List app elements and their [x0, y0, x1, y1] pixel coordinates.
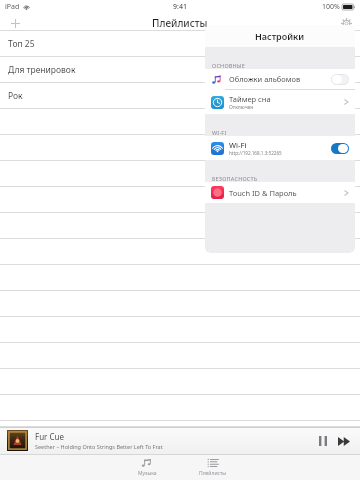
- staticText: ОСНОВНЫЕ: [212, 62, 245, 69]
- staticText: Таймер сна: [229, 94, 271, 104]
- staticText: Топ 25: [8, 38, 35, 50]
- button[interactable]: Touch ID & Пароль: [205, 182, 355, 203]
- button[interactable]: Switch on: [331, 143, 349, 154]
- button[interactable]: Add playlist: [7, 15, 23, 31]
- staticText: Настройки: [255, 30, 305, 42]
- button[interactable]: Таймер сна: [205, 90, 355, 114]
- staticText: iPad: [5, 2, 20, 12]
- button[interactable]: Settings: [338, 15, 354, 31]
- button[interactable]: Wi-Fi: [205, 136, 355, 160]
- button[interactable]: Рок: [0, 83, 360, 109]
- staticText: Плейлисты: [152, 16, 208, 30]
- button[interactable]: Музыка: [126, 454, 168, 480]
- staticText: Seether – Holding Onto Strings Better Le…: [35, 443, 163, 450]
- staticText: http://192.168.1.3:52265: [229, 150, 282, 156]
- staticText: Плейлисты: [199, 470, 227, 477]
- staticText: 9:41: [173, 2, 187, 12]
- staticText: Музыка: [138, 470, 157, 477]
- staticText: 100%: [322, 2, 340, 12]
- button[interactable]: Pause: [314, 432, 332, 450]
- staticText: Fur Cue: [35, 431, 64, 442]
- button[interactable]: Switch off: [331, 74, 349, 85]
- button[interactable]: Обложки альбомов: [205, 69, 355, 89]
- staticText: Рок: [8, 90, 23, 102]
- button[interactable]: Плейлисты: [192, 454, 234, 480]
- staticText: Touch ID & Пароль: [229, 188, 344, 198]
- staticText: БЕЗОПАСНОСТЬ: [212, 175, 258, 182]
- staticText: Для тренировок: [8, 64, 76, 76]
- staticText: WI-FI: [212, 129, 227, 136]
- staticText: Wi-Fi: [229, 140, 247, 150]
- staticText: Отключен: [229, 104, 254, 111]
- button[interactable]: Для тренировок: [0, 57, 360, 83]
- staticText: Обложки альбомов: [229, 74, 331, 84]
- button[interactable]: Next track: [335, 432, 353, 450]
- button[interactable]: Топ 25: [0, 31, 360, 57]
